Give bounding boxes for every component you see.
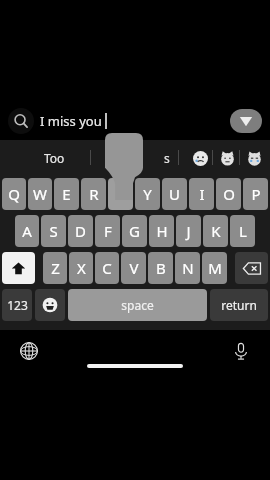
- button[interactable]: I: [189, 178, 214, 210]
- staticText: V: [129, 258, 139, 278]
- button[interactable]: W: [28, 178, 52, 210]
- button[interactable]: [108, 178, 133, 210]
- button[interactable]: Backspace: [235, 252, 268, 284]
- staticText: K: [211, 221, 221, 241]
- staticText: N: [182, 258, 194, 278]
- staticText: A: [22, 221, 32, 241]
- button[interactable]: G: [122, 215, 147, 247]
- button[interactable]: X: [69, 252, 93, 284]
- staticText: space: [121, 297, 154, 313]
- button[interactable]: O: [216, 178, 241, 210]
- button[interactable]: S: [41, 215, 66, 247]
- button[interactable]: B: [148, 252, 173, 284]
- staticText: F: [104, 221, 112, 241]
- button[interactable]: Send: [230, 109, 262, 133]
- button[interactable]: s: [118, 144, 170, 172]
- button[interactable]: space: [68, 289, 207, 321]
- button[interactable]: C: [95, 252, 119, 284]
- button[interactable]: J: [176, 215, 201, 247]
- staticText: I: [199, 184, 205, 204]
- button[interactable]: Q: [2, 178, 26, 210]
- button[interactable]: M: [202, 252, 227, 284]
- staticText: O: [223, 184, 235, 204]
- button[interactable]: return: [210, 289, 268, 321]
- staticText: I miss you: [40, 112, 102, 130]
- button[interactable]: Y: [135, 178, 160, 210]
- button[interactable]: H: [149, 215, 174, 247]
- staticText: U: [169, 184, 180, 204]
- button[interactable]: Sad cat emoji: [243, 147, 265, 169]
- staticText: X: [77, 258, 86, 278]
- staticText: Q: [8, 184, 20, 204]
- staticText: D: [75, 221, 86, 241]
- button[interactable]: N: [175, 252, 200, 284]
- staticText: return: [221, 297, 257, 313]
- staticText: B: [156, 258, 166, 278]
- button[interactable]: E: [54, 178, 79, 210]
- staticText: H: [156, 221, 168, 241]
- staticText: C: [102, 258, 112, 278]
- staticText: M: [208, 258, 222, 278]
- staticText: S: [49, 221, 58, 241]
- button[interactable]: Crying face emoji: [189, 147, 211, 169]
- button[interactable]: Too: [22, 144, 86, 172]
- staticText: Too: [44, 150, 65, 166]
- button[interactable]: L: [230, 215, 255, 247]
- staticText: L: [239, 221, 247, 241]
- staticText: 123: [7, 297, 28, 313]
- button[interactable]: A: [15, 215, 39, 247]
- staticText: P: [251, 184, 261, 204]
- button[interactable]: K: [203, 215, 228, 247]
- button[interactable]: 123: [2, 289, 32, 321]
- button[interactable]: P: [243, 178, 268, 210]
- staticText: R: [89, 184, 99, 204]
- staticText: E: [62, 184, 71, 204]
- button[interactable]: Shift: [2, 252, 35, 284]
- button[interactable]: Search: [8, 108, 34, 134]
- button[interactable]: F: [95, 215, 120, 247]
- button[interactable]: Voice input: [226, 336, 256, 366]
- staticText: W: [33, 184, 47, 204]
- button[interactable]: U: [162, 178, 187, 210]
- staticText: J: [186, 221, 191, 241]
- button[interactable]: Z: [43, 252, 67, 284]
- button[interactable]: D: [68, 215, 93, 247]
- staticText: Z: [51, 258, 60, 278]
- button[interactable]: Change keyboard language: [14, 336, 44, 366]
- staticText: s: [164, 150, 170, 166]
- staticText: G: [129, 221, 140, 241]
- staticText: Y: [143, 184, 152, 204]
- button[interactable]: V: [121, 252, 146, 284]
- button[interactable]: R: [81, 178, 106, 210]
- button[interactable]: Cat face emoji: [216, 147, 238, 169]
- button[interactable]: Emoji: [35, 289, 65, 321]
